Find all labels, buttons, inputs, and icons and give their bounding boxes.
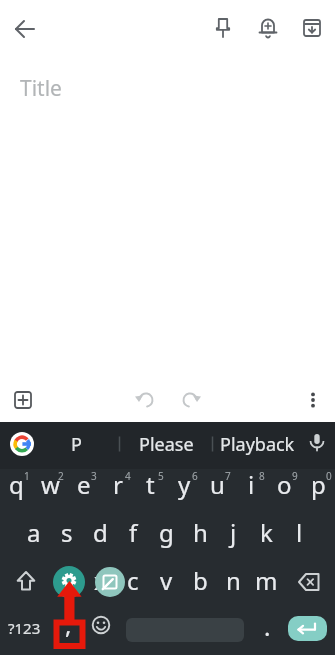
staticText: p (311, 468, 326, 501)
staticText: y (178, 468, 191, 501)
staticText: g (159, 516, 174, 549)
button[interactable]: . (252, 606, 282, 646)
staticText: P (71, 432, 82, 457)
staticText: 9 (292, 469, 298, 483)
button[interactable] (293, 380, 333, 420)
button[interactable]: m (249, 557, 283, 603)
button[interactable] (84, 608, 118, 642)
button[interactable] (299, 424, 335, 462)
staticText: 3 (91, 469, 97, 483)
button[interactable]: j (216, 509, 250, 555)
button[interactable]: u (201, 461, 234, 507)
staticText: o (277, 468, 292, 501)
staticText: 5 (158, 469, 164, 483)
button[interactable]: n (216, 557, 250, 603)
staticText: 4 (125, 469, 131, 483)
button[interactable]: b (183, 557, 217, 603)
button[interactable]: o (268, 461, 301, 507)
button[interactable]: a (17, 509, 51, 555)
button[interactable]: d (83, 509, 117, 555)
button[interactable]: h (183, 509, 217, 555)
button[interactable]: p (302, 461, 335, 507)
button[interactable]: v (149, 557, 183, 603)
staticText: i (248, 468, 255, 501)
button[interactable]: k (249, 509, 283, 555)
staticText: . (264, 610, 271, 643)
button[interactable]: g (149, 509, 183, 555)
button[interactable] (7, 429, 37, 459)
button[interactable]: z (50, 557, 84, 603)
button[interactable]: w (34, 461, 67, 507)
staticText: 1 (24, 469, 30, 483)
button[interactable]: r (101, 461, 134, 507)
button[interactable] (53, 566, 85, 598)
staticText: e (77, 468, 91, 501)
button[interactable]: , (53, 604, 83, 644)
staticText: q (9, 468, 24, 501)
staticText: Playback (220, 432, 295, 457)
staticText: r (113, 468, 123, 501)
staticText: 8 (259, 469, 265, 483)
staticText: Title (20, 74, 62, 102)
staticText: , (65, 608, 72, 641)
button[interactable]: l (282, 509, 316, 555)
staticText: 2 (58, 469, 64, 483)
staticText: u (210, 468, 225, 501)
staticText: k (260, 516, 273, 549)
staticText: m (255, 564, 278, 597)
button[interactable] (292, 8, 332, 48)
button[interactable] (203, 8, 243, 48)
button[interactable]: x (83, 557, 117, 603)
staticText: x (94, 564, 107, 597)
staticText: 6 (192, 469, 198, 483)
button[interactable]: e (67, 461, 100, 507)
staticText: j (230, 516, 237, 549)
staticText: 7 (225, 469, 231, 483)
staticText: c (127, 564, 139, 597)
button[interactable] (6, 561, 46, 601)
button[interactable]: i (235, 461, 268, 507)
staticText: b (193, 564, 208, 597)
button[interactable]: s (50, 509, 84, 555)
button[interactable] (248, 8, 288, 48)
staticText: f (129, 516, 138, 549)
staticText: n (226, 564, 241, 597)
staticText: s (61, 516, 73, 549)
button[interactable] (288, 616, 327, 641)
button[interactable] (170, 380, 210, 420)
button[interactable]: q (0, 461, 33, 507)
staticText: z (61, 564, 73, 597)
button[interactable] (5, 9, 45, 49)
button[interactable] (289, 562, 329, 602)
staticText: ?123 (8, 618, 41, 638)
button[interactable]: c (116, 557, 150, 603)
staticText: w (41, 468, 60, 501)
button[interactable] (126, 380, 166, 420)
staticText: Please (139, 432, 194, 457)
button[interactable]: t (134, 461, 167, 507)
button[interactable] (3, 380, 43, 420)
button[interactable]: ?123 (2, 613, 46, 643)
button[interactable] (95, 567, 125, 597)
staticText: v (160, 564, 173, 597)
staticText: l (296, 516, 303, 549)
staticText: 0 (326, 469, 332, 483)
button[interactable]: Title (20, 74, 220, 102)
staticText: a (27, 516, 41, 549)
staticText: h (193, 516, 208, 549)
button[interactable]: f (116, 509, 150, 555)
button[interactable]: y (168, 461, 201, 507)
button[interactable]: P (56, 425, 96, 463)
button[interactable]: Please (121, 425, 211, 463)
staticText: d (93, 516, 108, 549)
staticText: t (146, 468, 155, 501)
button[interactable]: Playback (210, 425, 304, 463)
